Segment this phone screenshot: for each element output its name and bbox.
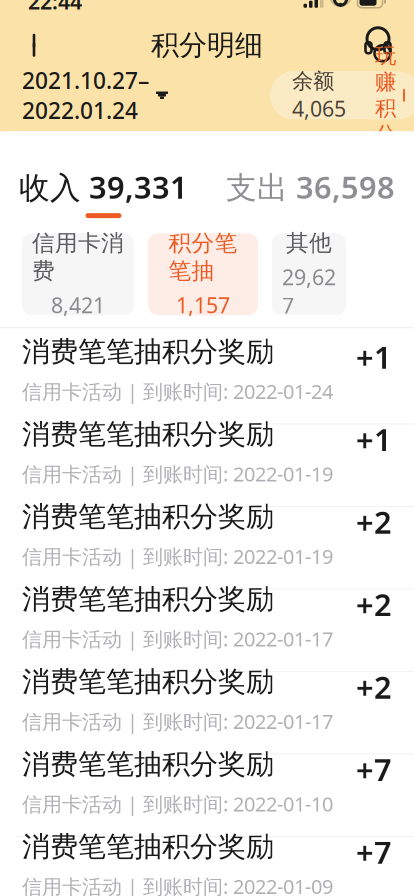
staticText: 信用卡活动 | 到账时间: 2022-01-17 <box>22 708 333 734</box>
button[interactable]: 收入 39,331 <box>0 155 207 229</box>
staticText: 支出 36,598 <box>226 166 395 207</box>
button[interactable]: 余额4,065 <box>270 71 414 119</box>
button[interactable]: 消费笔笔抽积分奖励 <box>0 411 414 493</box>
button[interactable]: 消费笔笔抽积分奖励 <box>0 823 414 896</box>
button[interactable]: 消费笔笔抽积分奖励 <box>0 493 414 576</box>
staticText: 29,627 <box>282 263 336 319</box>
button[interactable]: 返回 <box>12 23 60 67</box>
staticText: 消费笔笔抽积分奖励 <box>22 664 274 699</box>
staticText: 信用卡活动 | 到账时间: 2022-01-19 <box>22 543 333 569</box>
staticText: +7 <box>356 749 392 790</box>
button[interactable]: 消费笔笔抽积分奖励 <box>0 576 414 658</box>
button[interactable]: 消费笔笔抽积分奖励 <box>0 328 414 411</box>
staticText: 8,421 <box>51 291 105 319</box>
staticText: 消费笔笔抽积分奖励 <box>22 747 274 781</box>
staticText: 余额4,065 <box>292 68 346 122</box>
button[interactable]: 支出 36,598 <box>207 155 414 229</box>
staticText: +1 <box>356 419 392 460</box>
button[interactable]: 2021.10.27–2022.01.24 <box>22 57 168 133</box>
staticText: 22:44 <box>28 0 82 15</box>
staticText: 其他 <box>286 229 332 257</box>
staticText: 消费笔笔抽积分奖励 <box>22 334 274 369</box>
staticText: 信用卡消费 <box>32 229 124 285</box>
staticText: 2021.10.27–2022.01.24 <box>22 65 149 125</box>
staticText: 信用卡活动 | 到账时间: 2022-01-19 <box>22 460 333 487</box>
staticText: +1 <box>356 336 392 377</box>
button[interactable]: 积分笔笔抽 <box>148 233 258 315</box>
staticText: +2 <box>356 501 392 542</box>
button[interactable]: 其他 <box>272 233 346 315</box>
button[interactable]: 信用卡消费 <box>22 233 134 315</box>
staticText: 收入 39,331 <box>19 166 188 207</box>
staticText: 积分明细 <box>151 28 263 62</box>
button[interactable]: 消费笔笔抽积分奖励 <box>0 658 414 741</box>
staticText: 积分笔笔抽 <box>168 229 237 285</box>
staticText: +2 <box>356 584 392 625</box>
staticText: 信用卡活动 | 到账时间: 2022-01-09 <box>22 873 333 896</box>
button[interactable]: 客服 <box>354 23 402 67</box>
staticText: +2 <box>356 666 392 707</box>
staticText: +7 <box>356 831 392 872</box>
staticText: 信用卡活动 | 到账时间: 2022-01-10 <box>22 790 333 817</box>
staticText: 信用卡活动 | 到账时间: 2022-01-24 <box>22 378 333 404</box>
staticText: 信用卡活动 | 到账时间: 2022-01-17 <box>22 625 333 652</box>
button[interactable]: 消费笔笔抽积分奖励 <box>0 741 414 823</box>
staticText: 1,157 <box>176 291 230 319</box>
staticText: 消费笔笔抽积分奖励 <box>22 829 274 864</box>
staticText: 消费笔笔抽积分奖励 <box>22 417 274 451</box>
staticText: 玩赚积分 <box>375 43 396 148</box>
staticText: 消费笔笔抽积分奖励 <box>22 582 274 616</box>
staticText: 消费笔笔抽积分奖励 <box>22 499 274 534</box>
